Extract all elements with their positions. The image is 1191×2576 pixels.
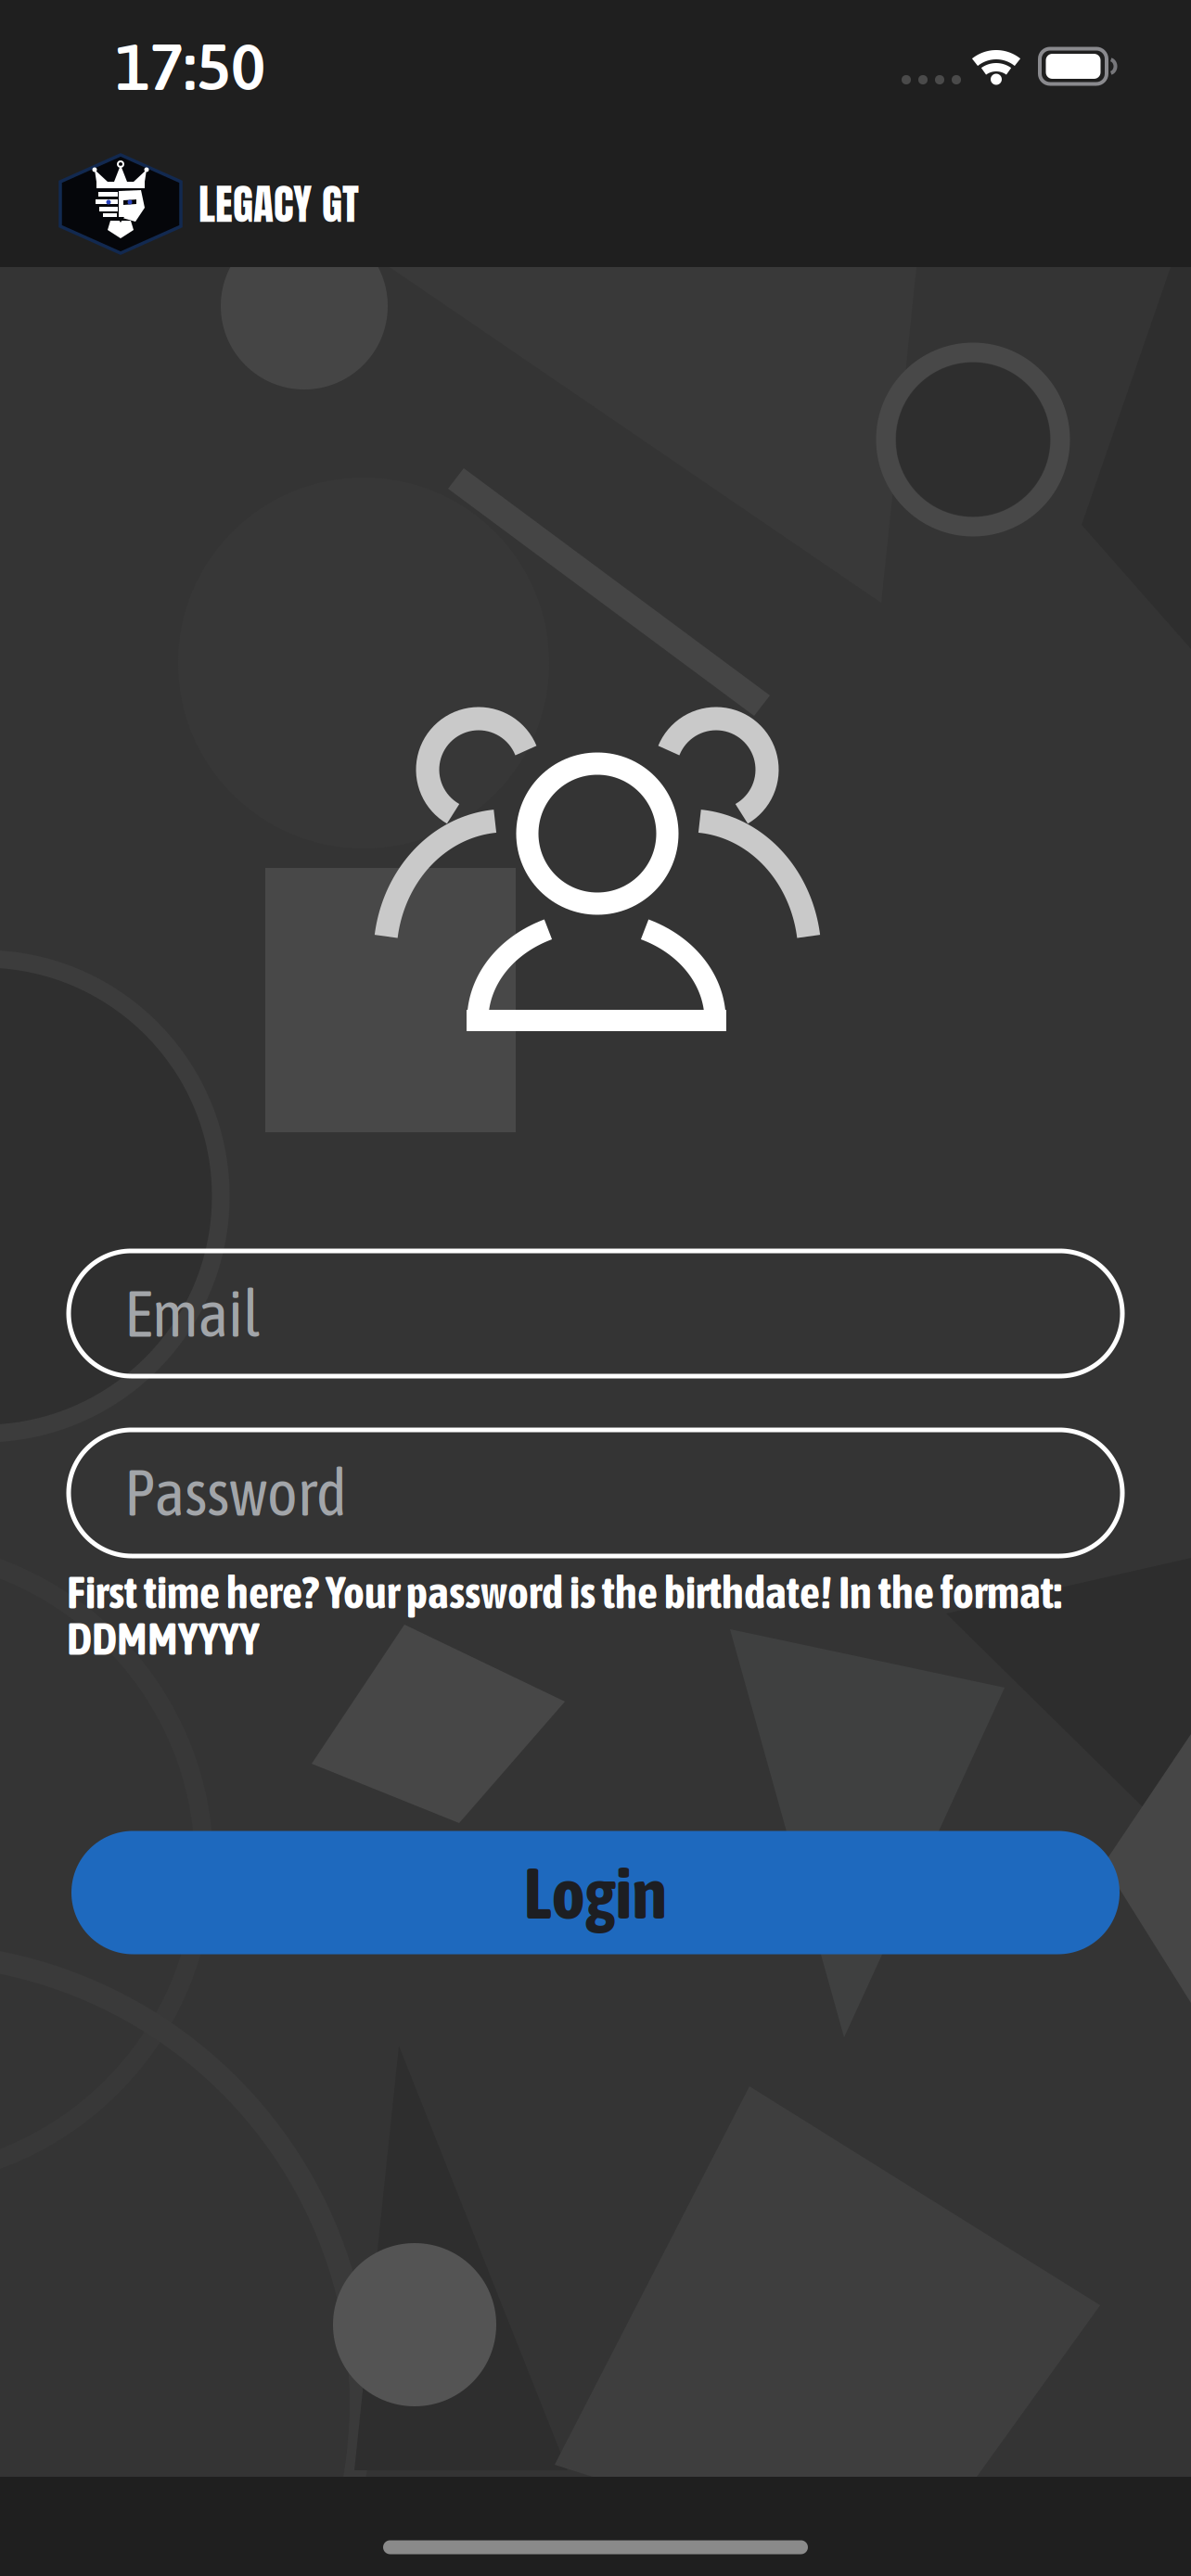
staticText: DDMMYYYY — [67, 1613, 260, 1664]
button[interactable]: Login — [71, 1831, 1120, 1954]
staticText: 17:50 — [115, 30, 265, 104]
staticText: Password — [124, 1456, 347, 1529]
staticText: Email — [124, 1277, 260, 1350]
staticText: LEGACY GT — [198, 172, 359, 236]
button[interactable]: Password — [69, 1430, 1122, 1556]
button[interactable]: Email — [69, 1251, 1122, 1376]
staticText: First time here? Your password is the bi… — [67, 1566, 1062, 1618]
staticText: Login — [524, 1852, 667, 1934]
